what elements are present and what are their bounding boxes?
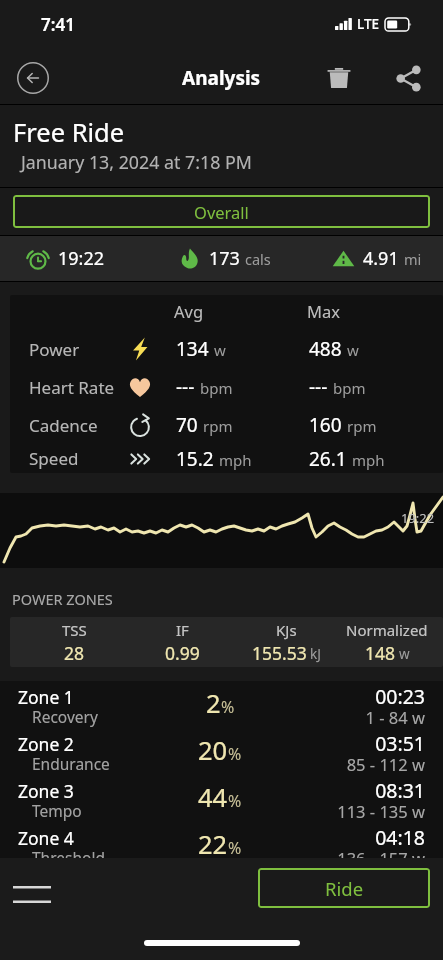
- staticText: 15.2: [176, 446, 214, 472]
- button[interactable]: Share: [385, 55, 431, 101]
- staticText: Tempo: [32, 800, 82, 821]
- staticText: 148: [365, 641, 396, 665]
- staticText: 134: [176, 336, 209, 362]
- staticText: ---: [176, 374, 195, 400]
- staticText: 28: [64, 641, 85, 665]
- staticText: %: [228, 743, 242, 765]
- staticText: Power: [29, 338, 80, 361]
- staticText: rpm: [347, 416, 377, 436]
- staticText: Cadence: [29, 414, 98, 437]
- staticText: Ride: [325, 876, 364, 901]
- button[interactable]: Back: [15, 60, 51, 96]
- staticText: 19:22: [401, 509, 435, 527]
- staticText: Overall: [194, 201, 249, 223]
- staticText: bpm: [200, 378, 233, 398]
- staticText: Max: [307, 300, 340, 322]
- staticText: 1 - 84 w: [365, 706, 425, 728]
- staticText: 2: [206, 686, 221, 721]
- staticText: Avg: [174, 300, 204, 322]
- staticText: Zone 4: [18, 826, 74, 850]
- staticText: %: [228, 790, 242, 812]
- staticText: %: [221, 696, 235, 718]
- staticText: Speed: [29, 447, 79, 470]
- staticText: 04:18: [375, 824, 425, 851]
- staticText: LTE: [357, 15, 380, 33]
- staticText: rpm: [203, 416, 233, 436]
- staticText: 155.53: [252, 641, 307, 665]
- staticText: 22: [198, 827, 228, 858]
- staticText: Zone 2: [18, 732, 74, 756]
- staticText: Endurance: [32, 753, 110, 774]
- staticText: mph: [352, 450, 385, 470]
- staticText: KJs: [276, 620, 297, 640]
- staticText: 03:51: [375, 730, 425, 757]
- staticText: Normalized: [346, 620, 428, 640]
- staticText: Zone 3: [18, 779, 74, 803]
- staticText: 160: [309, 412, 342, 438]
- staticText: 70: [176, 412, 198, 438]
- staticText: TSS: [62, 620, 87, 640]
- staticText: January 13, 2024 at 7:18 PM: [21, 150, 252, 174]
- button[interactable]: Overall: [13, 195, 430, 228]
- button[interactable]: Menu: [6, 872, 58, 916]
- staticText: w: [214, 340, 226, 360]
- staticText: 173: [209, 246, 240, 271]
- staticText: Zone 1: [18, 685, 74, 709]
- staticText: 00:23: [375, 683, 425, 710]
- staticText: 113 - 135 w: [337, 800, 425, 822]
- button[interactable]: Ride: [258, 868, 430, 908]
- staticText: 136 - 157 w: [337, 847, 425, 858]
- staticText: %: [228, 837, 242, 858]
- staticText: POWER ZONES: [12, 589, 113, 609]
- staticText: mi: [404, 249, 422, 269]
- staticText: w: [347, 340, 359, 360]
- staticText: 26.1: [309, 446, 347, 472]
- staticText: 7:41: [41, 13, 75, 36]
- staticText: IF: [176, 620, 189, 640]
- staticText: Threshold: [32, 847, 105, 858]
- staticText: 85 - 112 w: [346, 753, 425, 775]
- button[interactable]: Delete: [316, 55, 362, 101]
- staticText: Recovery: [32, 706, 98, 727]
- staticText: mph: [219, 450, 252, 470]
- staticText: kJ: [310, 645, 321, 663]
- staticText: 19:22: [58, 246, 105, 271]
- staticText: 20: [198, 733, 228, 768]
- staticText: cals: [245, 249, 271, 269]
- staticText: 44: [198, 780, 228, 815]
- staticText: 4.91: [363, 246, 399, 271]
- button[interactable]: Zone 2: [0, 728, 443, 775]
- button[interactable]: Zone 3: [0, 775, 443, 822]
- staticText: 488: [309, 336, 342, 362]
- staticText: ---: [309, 374, 328, 400]
- staticText: Heart Rate: [29, 376, 115, 399]
- staticText: Free Ride: [13, 115, 125, 150]
- button[interactable]: Zone 4: [0, 822, 443, 858]
- staticText: bpm: [333, 378, 366, 398]
- staticText: Analysis: [182, 65, 261, 91]
- staticText: 0.99: [165, 641, 200, 665]
- button[interactable]: Zone 1: [0, 681, 443, 728]
- staticText: 08:31: [375, 777, 425, 804]
- staticText: w: [399, 645, 410, 663]
